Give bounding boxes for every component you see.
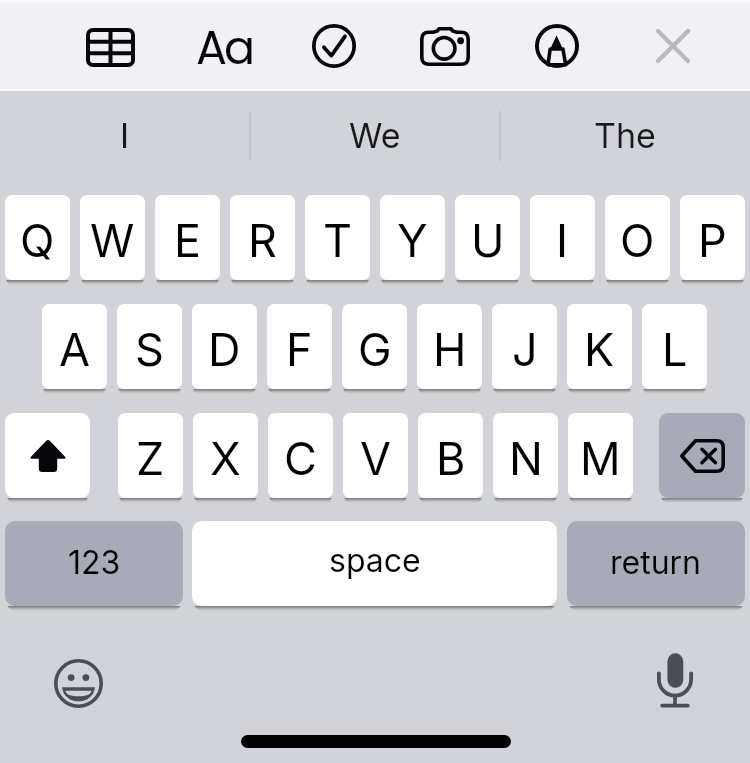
- staticText: Aa: [196, 16, 253, 78]
- staticText: J: [512, 322, 538, 376]
- staticText: B: [436, 431, 466, 485]
- button[interactable]: Y: [380, 195, 445, 280]
- button[interactable]: M: [568, 413, 633, 498]
- button[interactable]: F: [267, 304, 332, 389]
- button[interactable]: G: [342, 304, 407, 389]
- button[interactable]: J: [492, 304, 557, 389]
- staticText: I: [120, 115, 130, 156]
- staticText: The: [594, 115, 656, 156]
- staticText: U: [471, 213, 505, 267]
- staticText: G: [358, 322, 392, 376]
- button[interactable]: K: [567, 304, 632, 389]
- staticText: C: [284, 431, 317, 485]
- staticText: W: [90, 213, 135, 267]
- staticText: Q: [20, 213, 55, 267]
- staticText: T: [323, 213, 353, 267]
- button[interactable]: The: [500, 89, 750, 182]
- button[interactable]: return: [567, 521, 745, 606]
- button[interactable]: N: [493, 413, 558, 498]
- staticText: F: [286, 322, 313, 376]
- button[interactable]: Insert table: [71, 16, 149, 78]
- button[interactable]: 123: [5, 521, 183, 606]
- staticText: E: [174, 213, 202, 267]
- button[interactable]: D: [192, 304, 257, 389]
- button[interactable]: Backspace: [659, 413, 745, 498]
- staticText: H: [433, 322, 467, 376]
- staticText: V: [360, 431, 392, 485]
- staticText: A: [59, 322, 91, 376]
- button[interactable]: L: [642, 304, 707, 389]
- button[interactable]: P: [680, 195, 745, 280]
- button[interactable]: X: [193, 413, 258, 498]
- staticText: Z: [136, 431, 165, 485]
- button[interactable]: S: [117, 304, 182, 389]
- button[interactable]: R: [230, 195, 295, 280]
- staticText: space: [329, 541, 421, 580]
- button[interactable]: Markup: [518, 15, 596, 77]
- staticText: P: [698, 213, 727, 267]
- staticText: K: [584, 322, 615, 376]
- staticText: X: [210, 431, 241, 485]
- button[interactable]: A: [42, 304, 107, 389]
- staticText: L: [662, 322, 688, 376]
- button[interactable]: Aa: [185, 16, 263, 78]
- staticText: 123: [68, 543, 121, 582]
- button[interactable]: space: [192, 521, 557, 606]
- staticText: O: [620, 213, 655, 267]
- staticText: Y: [397, 213, 428, 267]
- button[interactable]: We: [250, 89, 500, 182]
- button[interactable]: Checklist: [295, 15, 373, 77]
- button[interactable]: I: [530, 195, 595, 280]
- button[interactable]: E: [155, 195, 220, 280]
- button[interactable]: I: [0, 89, 250, 182]
- button[interactable]: H: [417, 304, 482, 389]
- button[interactable]: B: [418, 413, 483, 498]
- staticText: D: [208, 322, 241, 376]
- button[interactable]: Camera: [406, 15, 484, 77]
- button[interactable]: U: [455, 195, 520, 280]
- button[interactable]: Emoji keyboard: [36, 641, 120, 725]
- staticText: N: [509, 431, 543, 485]
- staticText: return: [610, 543, 702, 582]
- button[interactable]: T: [305, 195, 370, 280]
- staticText: S: [135, 322, 164, 376]
- button[interactable]: Close: [634, 15, 712, 77]
- staticText: M: [580, 431, 621, 485]
- button[interactable]: Dictation: [633, 638, 717, 722]
- button[interactable]: V: [343, 413, 408, 498]
- button[interactable]: Q: [5, 195, 70, 280]
- button[interactable]: Shift: [5, 413, 90, 498]
- staticText: We: [349, 115, 401, 156]
- button[interactable]: W: [80, 195, 145, 280]
- button[interactable]: O: [605, 195, 670, 280]
- staticText: R: [248, 213, 277, 267]
- staticText: I: [556, 213, 569, 267]
- button[interactable]: C: [268, 413, 333, 498]
- button[interactable]: Z: [118, 413, 183, 498]
